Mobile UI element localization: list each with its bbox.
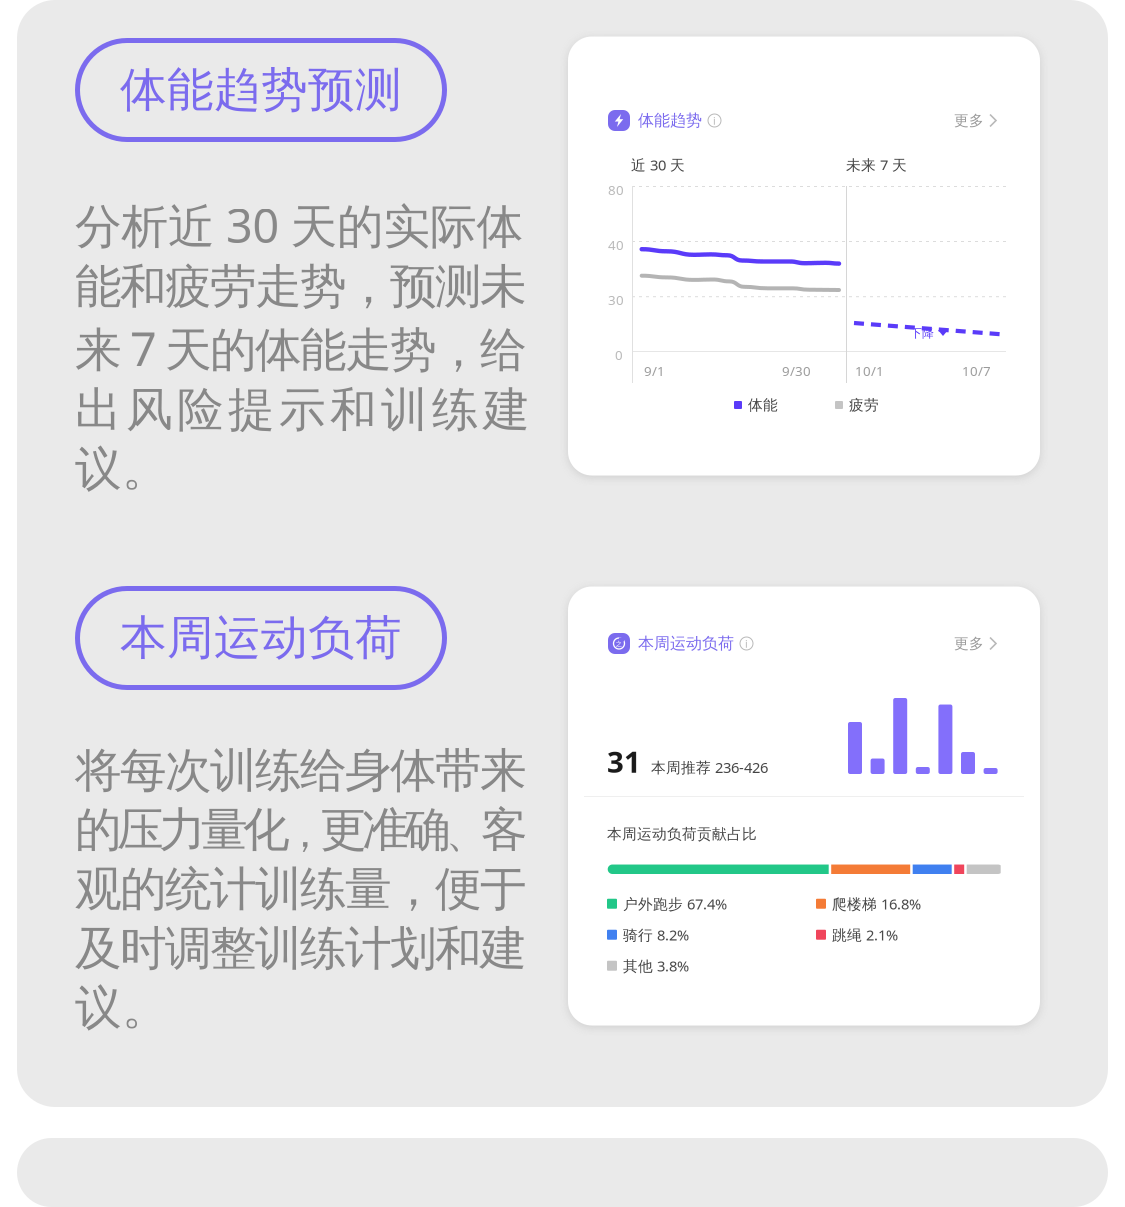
staticText: 30 — [608, 291, 624, 309]
staticText: 之 — [615, 640, 622, 648]
button[interactable]: 本周运动负荷 — [75, 586, 447, 690]
staticText: 的压力量化，更准确、客 — [75, 801, 528, 859]
staticText: 更多 — [954, 111, 984, 129]
staticText: 更多 — [954, 634, 984, 652]
staticText: 体能趋势预测 — [120, 61, 402, 119]
staticText: 本周运动负荷 — [120, 609, 402, 667]
staticText: 出风险提示和训练建 — [75, 381, 530, 439]
staticText: 近 30 天 — [631, 155, 685, 174]
staticText: 分析近 30 天的实际体 — [75, 194, 523, 256]
staticText: 跳绳 2.1% — [832, 925, 898, 944]
staticText: 户外跑步 67.4% — [623, 894, 727, 913]
staticText: 本周运动负荷 — [638, 634, 734, 653]
staticText: 及时调整训练计划和建 — [75, 920, 527, 977]
button[interactable]: 更多 — [954, 108, 998, 132]
staticText: 来 7 天的体能走势，给 — [75, 317, 527, 379]
staticText: 疲劳 — [849, 396, 879, 414]
staticText: 议。 — [75, 979, 169, 1037]
staticText: 将每次训练给身体带来 — [75, 742, 527, 799]
staticText: 80 — [608, 181, 624, 199]
staticText: 其他 3.8% — [623, 956, 689, 975]
staticText: 10/1 — [855, 362, 884, 380]
staticText: 本周推荐 236-426 — [651, 758, 768, 777]
staticText: 9/30 — [782, 362, 811, 380]
button[interactable]: 更多 — [954, 631, 998, 655]
staticText: 9/1 — [644, 362, 665, 380]
staticText: 爬楼梯 16.8% — [832, 894, 921, 913]
staticText: i — [713, 113, 716, 128]
staticText: 0 — [615, 346, 623, 364]
staticText: 体能趋势 — [638, 111, 702, 130]
staticText: 骑行 8.2% — [623, 925, 689, 944]
staticText: 31 — [607, 742, 641, 781]
staticText: 议。 — [75, 441, 169, 498]
button[interactable]: 体能趋势预测 — [75, 38, 447, 142]
staticText: 下降 — [910, 326, 934, 341]
staticText: 本周运动负荷贡献占比 — [607, 825, 757, 843]
staticText: 观的统计训练量，便于 — [75, 861, 527, 918]
staticText: 体能 — [748, 396, 778, 414]
staticText: 10/7 — [962, 362, 991, 380]
staticText: 能和疲劳走势，预测未 — [75, 258, 527, 315]
staticText: 未来 7 天 — [846, 155, 907, 174]
staticText: i — [745, 636, 748, 651]
staticText: 40 — [608, 236, 624, 254]
